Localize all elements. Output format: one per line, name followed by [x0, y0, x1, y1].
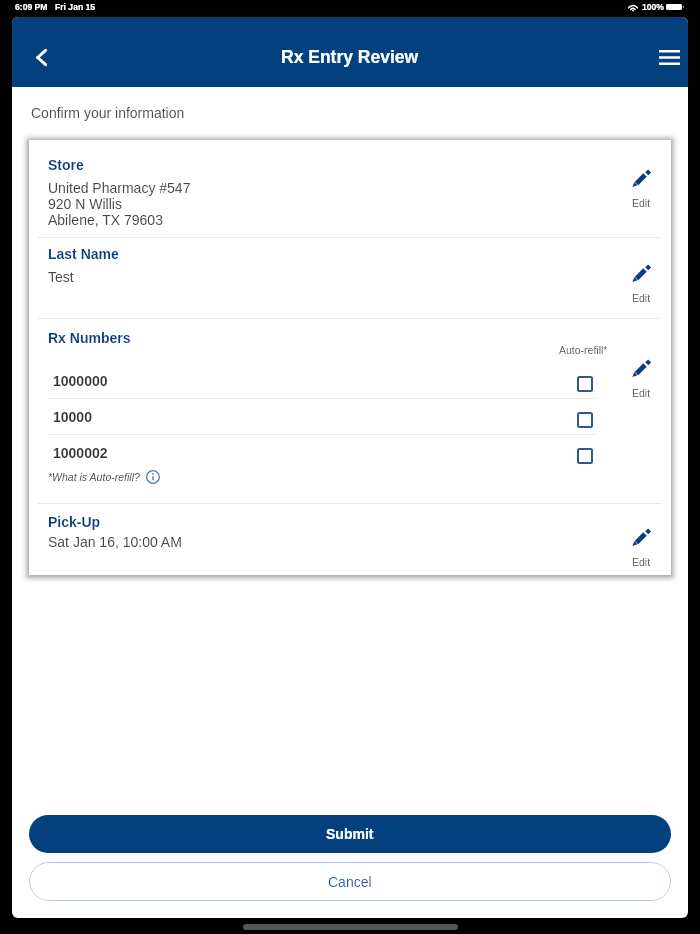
button[interactable]: Auto-refill [568, 403, 602, 437]
staticText: Edit [632, 197, 651, 209]
staticText: Cancel [328, 874, 372, 890]
staticText: Edit [632, 556, 651, 568]
staticText: Pick-Up [48, 514, 101, 530]
staticText: Sat Jan 16, 10:00 AM [48, 534, 182, 550]
staticText: Confirm your information [31, 105, 185, 121]
button[interactable]: Menu [648, 36, 688, 78]
staticText: 10000 [53, 409, 92, 425]
button[interactable]: Edit [613, 170, 669, 209]
staticText: Submit [326, 826, 374, 842]
button[interactable]: Edit [613, 529, 669, 568]
staticText: *What is Auto-refill? [48, 471, 140, 483]
staticText: Rx Numbers [48, 330, 131, 346]
staticText: Auto-refill* [559, 344, 608, 356]
button[interactable]: 10000 [29, 399, 671, 434]
button[interactable]: What is Auto-refill info [145, 469, 161, 485]
button[interactable]: Auto-refill [568, 367, 602, 401]
staticText: Last Name [48, 246, 119, 262]
button[interactable]: 1000002 [29, 435, 671, 470]
staticText: United Pharmacy #547 [48, 180, 191, 196]
button[interactable]: Cancel [29, 862, 671, 901]
button[interactable]: Auto-refill [568, 439, 602, 473]
staticText: Edit [632, 292, 651, 304]
staticText: 1000000 [53, 373, 108, 389]
staticText: Test [48, 269, 74, 285]
staticText: 920 N Willis [48, 196, 122, 212]
staticText: Rx Entry Review [281, 47, 419, 67]
staticText: 1000002 [53, 445, 108, 461]
button[interactable]: Back [18, 34, 64, 80]
staticText: Edit [632, 387, 651, 399]
staticText: Store [48, 157, 84, 173]
staticText: 6:09 PM [15, 2, 48, 12]
staticText: Abilene, TX 79603 [48, 212, 163, 228]
button[interactable]: Edit [613, 265, 669, 304]
staticText: 100% [642, 2, 664, 12]
button[interactable]: 1000000 [29, 363, 671, 398]
staticText: Fri Jan 15 [55, 2, 96, 12]
button[interactable]: Submit [29, 815, 671, 853]
button[interactable]: Edit [613, 360, 669, 399]
